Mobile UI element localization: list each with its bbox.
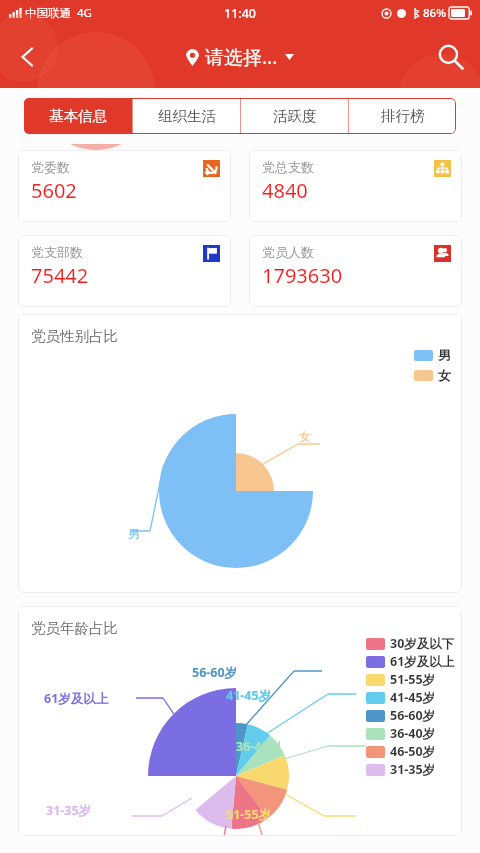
staticText: 4G bbox=[77, 5, 92, 21]
staticText: 党员年龄占比 bbox=[31, 619, 118, 637]
staticText: 56-60岁 bbox=[390, 707, 436, 724]
staticText: 75442 bbox=[31, 262, 89, 289]
button[interactable]: Search bbox=[422, 26, 480, 88]
button[interactable]: 请选择... bbox=[186, 44, 294, 70]
staticText: 41-45岁 bbox=[226, 687, 272, 704]
staticText: 51-55岁 bbox=[390, 671, 436, 688]
staticText: 86% bbox=[423, 5, 446, 21]
button[interactable]: 党委数 bbox=[18, 150, 231, 222]
staticText: 46-50岁 bbox=[390, 743, 436, 760]
staticText: 女 bbox=[299, 429, 311, 444]
staticText: 党总支数 bbox=[262, 159, 314, 175]
button[interactable]: 组织生活 bbox=[133, 98, 240, 134]
button[interactable]: 党支部数 bbox=[18, 235, 231, 307]
staticText: 中国联通 bbox=[25, 6, 71, 20]
staticText: 30岁及以下 bbox=[390, 635, 455, 652]
button[interactable]: 排行榜 bbox=[349, 98, 456, 134]
staticText: 党支部数 bbox=[31, 244, 83, 260]
staticText: 56-60岁 bbox=[192, 664, 238, 681]
staticText: 活跃度 bbox=[273, 107, 317, 125]
staticText: 女 bbox=[438, 367, 451, 383]
staticText: 61岁及以上 bbox=[390, 653, 455, 670]
staticText: 36-40岁 bbox=[236, 738, 282, 755]
staticText: 党委数 bbox=[31, 159, 70, 175]
staticText: 5602 bbox=[31, 177, 77, 204]
staticText: 51-55岁 bbox=[226, 806, 272, 823]
button[interactable]: 基本信息 bbox=[24, 98, 132, 134]
staticText: 61岁及以上 bbox=[44, 690, 109, 707]
button[interactable]: 活跃度 bbox=[241, 98, 348, 134]
staticText: 组织生活 bbox=[158, 107, 216, 125]
staticText: 党员人数 bbox=[262, 244, 314, 260]
button[interactable]: 党员人数 bbox=[249, 235, 462, 307]
staticText: 基本信息 bbox=[49, 107, 107, 125]
button[interactable]: 党总支数 bbox=[249, 150, 462, 222]
staticText: 男 bbox=[438, 347, 451, 363]
staticText: 11:40 bbox=[224, 5, 257, 22]
staticText: 41-45岁 bbox=[390, 689, 436, 706]
staticText: 31-35岁 bbox=[46, 802, 92, 819]
staticText: 1793630 bbox=[262, 262, 343, 289]
staticText: 31-35岁 bbox=[390, 761, 436, 778]
staticText: 党员性别占比 bbox=[31, 327, 118, 345]
staticText: 4840 bbox=[262, 177, 308, 204]
staticText: 36-40岁 bbox=[390, 725, 436, 742]
staticText: 男 bbox=[128, 526, 140, 541]
staticText: 排行榜 bbox=[381, 107, 425, 125]
button[interactable]: Back bbox=[0, 26, 52, 88]
staticText: 请选择... bbox=[205, 44, 278, 70]
